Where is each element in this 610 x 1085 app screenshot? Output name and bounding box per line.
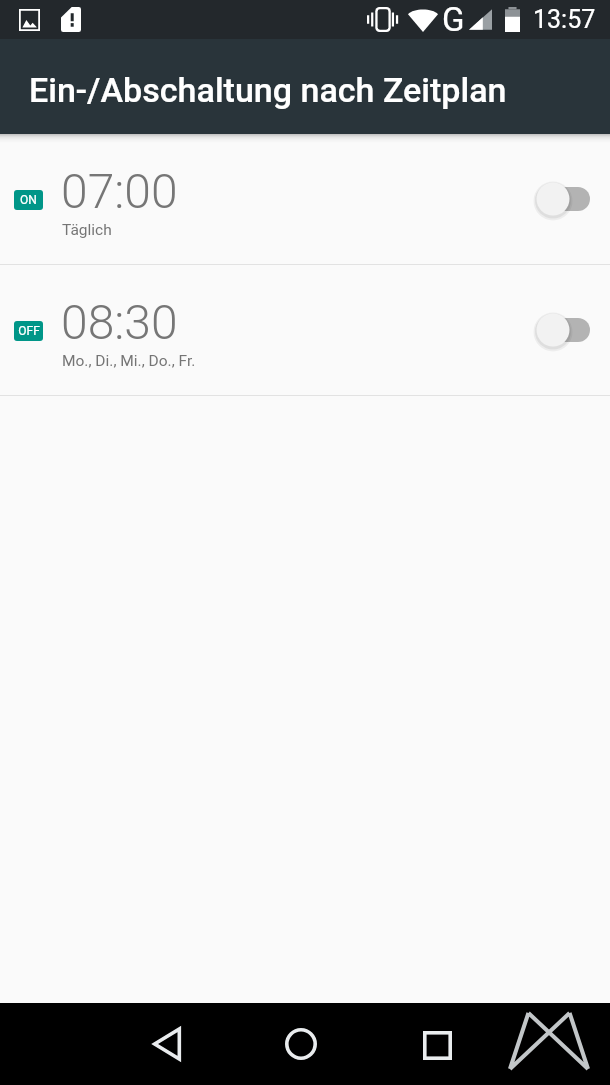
staticText: Ein-/Abschaltung nach Zeitplan xyxy=(29,70,507,110)
button[interactable]: Home xyxy=(268,1011,334,1077)
button[interactable]: Hide navigation bar xyxy=(504,1008,594,1074)
button[interactable]: Toggle schedule xyxy=(526,171,606,227)
staticText: Täglich xyxy=(62,221,112,239)
button[interactable]: ON xyxy=(0,134,610,264)
staticText: 07:00 xyxy=(61,163,178,219)
staticText: OFF xyxy=(18,324,40,338)
staticText: ON xyxy=(20,193,37,207)
button[interactable]: Toggle schedule xyxy=(526,302,606,358)
staticText: G xyxy=(442,0,465,39)
button[interactable]: OFF xyxy=(0,265,610,395)
button[interactable]: Back xyxy=(134,1011,200,1077)
staticText: Mo., Di., Mi., Do., Fr. xyxy=(62,352,196,370)
staticText: 13:57 xyxy=(533,5,596,34)
button[interactable]: Recent apps xyxy=(404,1012,470,1078)
staticText: 08:30 xyxy=(61,294,178,350)
